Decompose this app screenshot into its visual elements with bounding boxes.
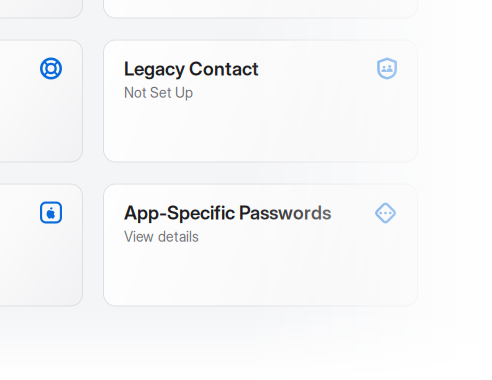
- button[interactable]: Devices: [103, 0, 418, 18]
- button[interactable]: App-Specific Passwords: [103, 183, 418, 306]
- staticText: Not Set Up: [124, 84, 193, 101]
- button[interactable]: Legacy Contact: [103, 39, 418, 162]
- button[interactable]: Support: [0, 0, 83, 18]
- button[interactable]: Apple Account: [0, 183, 83, 306]
- staticText: Legacy Contact: [124, 57, 259, 80]
- staticText: App-Specific Passwords: [124, 201, 331, 224]
- button[interactable]: Support: [0, 39, 83, 162]
- staticText: View details: [124, 228, 199, 245]
